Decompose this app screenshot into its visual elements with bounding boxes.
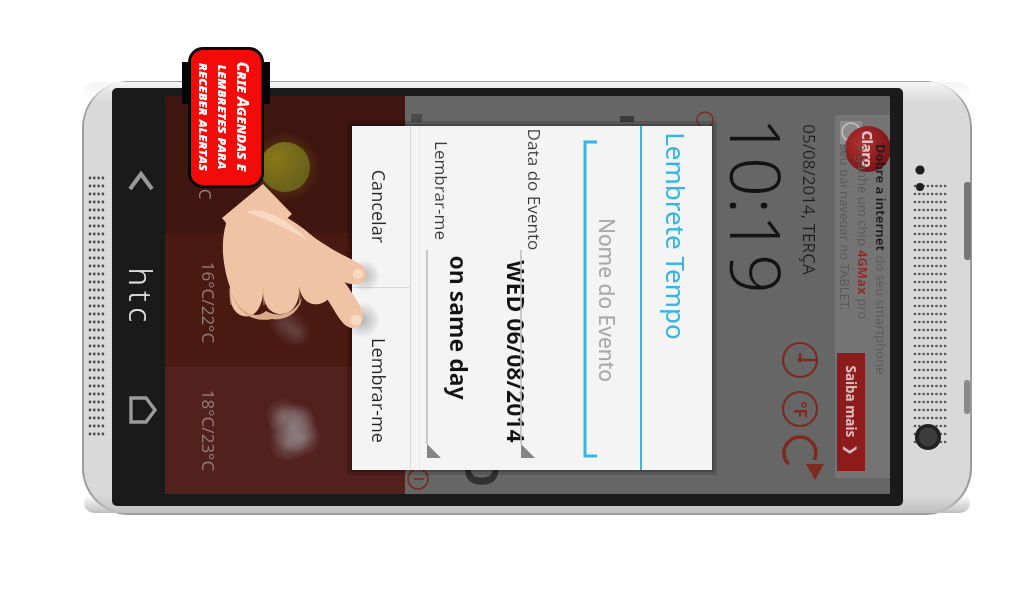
staticText: 4GMax bbox=[854, 250, 872, 295]
button[interactable]: Back bbox=[113, 150, 165, 212]
staticText: WED 06/08/2014 bbox=[500, 121, 531, 494]
staticText: ʟᴇᴍʙʀᴇᴛᴇs ᴘᴀʀᴀ bbox=[214, 0, 234, 347]
staticText: Saiba mais ❯ bbox=[841, 330, 859, 490]
staticText: Cʀɪᴇ Aɢᴇɴᴅᴀs ᴇ bbox=[231, 0, 253, 346]
staticText: 05/08/2014, TERÇA bbox=[797, 96, 820, 429]
staticText: 10:19 bbox=[709, 96, 804, 435]
staticText: °C bbox=[193, 96, 216, 420]
staticText: e ganhe um chip bbox=[854, 144, 872, 250]
staticText: do seu smartphone bbox=[872, 252, 890, 374]
staticText: 18°C/23°C bbox=[196, 200, 219, 494]
staticText: Cancelar bbox=[365, 96, 390, 436]
button[interactable] bbox=[837, 353, 865, 471]
button[interactable]: Lembrar-me spinner: on same day bbox=[420, 126, 514, 470]
staticText: Dobre a internet bbox=[872, 144, 890, 252]
staticText: on same day bbox=[443, 97, 474, 494]
staticText: pro bbox=[854, 295, 872, 320]
staticText: Data do Evento bbox=[522, 96, 545, 419]
button[interactable]: Nome do Evento bbox=[608, 126, 640, 470]
staticText: 16°C/22°C bbox=[196, 96, 219, 494]
button[interactable]: Home bbox=[113, 382, 165, 440]
staticText: Lembrar-me bbox=[365, 160, 390, 494]
staticText: Claro bbox=[858, 119, 877, 179]
staticText: Lembrete Tempo bbox=[659, 96, 694, 466]
staticText: SÃO PAULO bbox=[451, 294, 514, 494]
staticText: Lembrar-me bbox=[429, 96, 452, 420]
staticText: htc bbox=[119, 67, 161, 527]
button[interactable]: Lembrar-me bbox=[352, 288, 410, 470]
button[interactable]: Cancelar bbox=[352, 126, 410, 287]
staticText: Nome do Evento bbox=[592, 96, 621, 494]
button[interactable]: Data do Evento: WED 06/08/2014 bbox=[514, 126, 608, 470]
staticText: seu pai navegar no TABLET. bbox=[840, 144, 854, 311]
button[interactable]: Crie agendas e lembretes para receber al… bbox=[191, 50, 261, 185]
staticText: ʀᴇcᴇʙᴇʀ ᴀʟᴇʀᴛᴀs bbox=[195, 0, 215, 347]
staticText: °F bbox=[788, 379, 811, 439]
